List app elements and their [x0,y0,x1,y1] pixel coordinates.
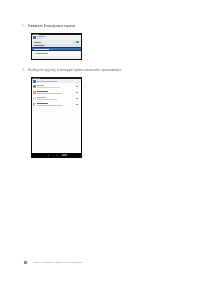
button[interactable] [32,95,81,101]
button[interactable] [32,83,81,89]
button[interactable] [32,89,81,95]
staticText: 1. [22,24,25,28]
button[interactable]: 2. [22,67,122,71]
button[interactable] [32,51,81,56]
button[interactable] [32,40,81,44]
button[interactable]: Back [46,153,51,157]
staticText: Выберите группу, в которую нужно включит… [28,67,122,71]
button[interactable] [31,33,82,60]
button[interactable]: Recent apps [61,153,67,157]
button[interactable]: 1. [22,24,76,28]
button[interactable] [32,79,81,83]
button[interactable] [32,101,81,107]
staticText: 2. [22,67,25,71]
button[interactable]: Back [31,77,82,158]
staticText: Нажмите Блокировка экрана [28,24,76,28]
button[interactable]: Home [54,153,59,157]
button[interactable] [32,47,81,51]
staticText: Глава 5. Настройка и работа с приложения… [33,261,82,264]
